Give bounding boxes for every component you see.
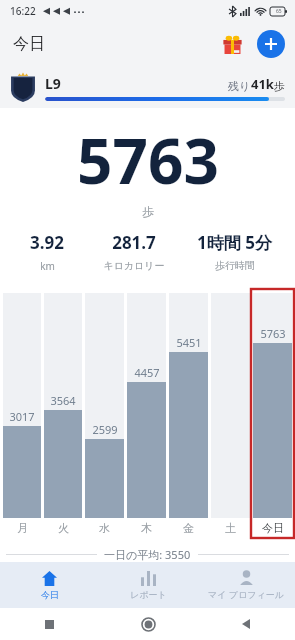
staticText: 3.92 bbox=[30, 231, 64, 254]
staticText: 火 bbox=[58, 521, 69, 535]
staticText: 5451 bbox=[176, 335, 202, 350]
staticText: 16:22 bbox=[10, 4, 36, 18]
staticText: 歩 bbox=[142, 204, 154, 219]
staticText: 今日 bbox=[41, 589, 59, 600]
button[interactable]: Rewards bbox=[219, 31, 245, 57]
staticText: 2599 bbox=[92, 422, 118, 437]
staticText: 土 bbox=[225, 521, 236, 535]
staticText: 3017 bbox=[9, 409, 35, 424]
button[interactable]: 4457 bbox=[127, 293, 166, 538]
staticText: 残り bbox=[228, 79, 251, 93]
button[interactable]: 2599 bbox=[85, 293, 124, 538]
button[interactable]: 281.7 bbox=[86, 231, 182, 272]
staticText: 歩行時間 bbox=[215, 259, 255, 272]
staticText: 金 bbox=[183, 521, 194, 535]
staticText: 4457 bbox=[134, 365, 160, 380]
staticText: 木 bbox=[141, 521, 152, 535]
staticText: 1時間 5分 bbox=[197, 231, 272, 254]
button[interactable]: L9 bbox=[0, 66, 295, 108]
button[interactable]: Back bbox=[197, 608, 295, 640]
staticText: km bbox=[40, 259, 55, 273]
staticText: 水 bbox=[99, 521, 110, 535]
button[interactable]: 1時間 5分 bbox=[182, 231, 287, 272]
staticText: 3564 bbox=[50, 393, 76, 408]
staticText: 歩 bbox=[274, 79, 285, 93]
button[interactable]: Recents bbox=[0, 608, 99, 640]
staticText: 5763 bbox=[260, 326, 286, 341]
staticText: 5763 bbox=[77, 118, 219, 202]
button[interactable]: 3.92 bbox=[8, 231, 86, 273]
staticText: 281.7 bbox=[112, 231, 156, 254]
button[interactable]: 3564 bbox=[44, 293, 82, 538]
staticText: 月 bbox=[17, 521, 28, 535]
staticText: 今日 bbox=[262, 521, 284, 535]
staticText: マイ プロフィール bbox=[208, 588, 284, 600]
button[interactable]: マイ プロフィール bbox=[197, 562, 295, 608]
button[interactable]: Home bbox=[99, 608, 197, 640]
staticText: 一日の平均: 3550 bbox=[104, 547, 191, 562]
staticText: 41k bbox=[251, 75, 274, 93]
button[interactable]: 5451 bbox=[169, 293, 208, 538]
button[interactable]: レポート bbox=[99, 562, 197, 608]
staticText: 65 bbox=[276, 8, 282, 15]
staticText: キロカロリー bbox=[103, 259, 165, 272]
button[interactable]: 5763 bbox=[253, 293, 292, 538]
button[interactable]: 土 bbox=[211, 293, 250, 538]
staticText: L9 bbox=[45, 74, 61, 93]
button[interactable]: 3017 bbox=[3, 293, 41, 538]
button[interactable]: Add bbox=[257, 30, 285, 58]
staticText: レポート bbox=[130, 589, 167, 600]
staticText: 今日 bbox=[13, 34, 45, 54]
button[interactable]: 今日 bbox=[0, 562, 99, 608]
